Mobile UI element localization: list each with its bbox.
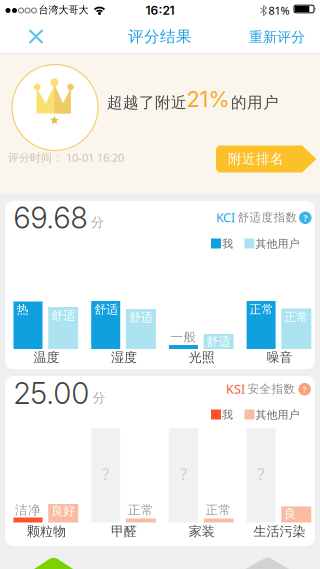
- staticText: KSI: [226, 380, 245, 397]
- staticText: 台湾大哥大: [38, 4, 88, 16]
- staticText: 21%: [186, 86, 229, 112]
- staticText: 温度: [33, 349, 59, 366]
- staticText: 16:21: [145, 3, 174, 18]
- staticText: ?: [303, 212, 307, 224]
- staticText: 我: [222, 408, 233, 422]
- staticText: 重新评分: [249, 28, 305, 46]
- staticText: ?: [102, 463, 109, 485]
- staticText: ?: [303, 383, 307, 395]
- button[interactable]: 附近排名: [216, 145, 316, 172]
- button[interactable]: 重新评分: [237, 24, 317, 50]
- staticText: 洁净: [15, 502, 41, 518]
- staticText: 其他用户: [255, 408, 299, 422]
- staticText: ?: [258, 463, 265, 485]
- staticText: 舒适: [207, 334, 231, 349]
- staticText: 评分结果: [128, 27, 192, 46]
- staticText: 正常: [284, 309, 308, 324]
- staticText: 正常: [128, 502, 154, 518]
- staticText: 81%: [268, 3, 289, 18]
- button[interactable]: 舒适度指数说明: [299, 212, 312, 224]
- staticText: 生活污染: [253, 523, 305, 540]
- staticText: 噪音: [266, 349, 292, 366]
- staticText: 25.00: [13, 376, 89, 411]
- staticText: 分: [91, 214, 104, 231]
- staticText: 光照: [189, 349, 215, 366]
- staticText: 附近排名: [228, 150, 284, 167]
- button[interactable]: 安全指数说明: [298, 383, 311, 395]
- staticText: 甲醛: [111, 523, 137, 540]
- staticText: 正常: [206, 502, 232, 518]
- staticText: 舒适: [129, 310, 153, 325]
- staticText: 舒适度指数: [237, 210, 297, 225]
- staticText: 舒适: [51, 308, 75, 323]
- staticText: 正常: [250, 302, 274, 317]
- staticText: 良好: [51, 503, 75, 518]
- staticText: 分: [92, 390, 105, 406]
- staticText: KCI: [216, 209, 235, 226]
- staticText: 热: [16, 302, 28, 317]
- staticText: 湿度: [111, 349, 137, 366]
- staticText: 69.68: [13, 200, 87, 236]
- staticText: 舒适: [94, 302, 118, 317]
- button[interactable]: 关闭: [14, 20, 58, 53]
- staticText: ?: [180, 463, 187, 485]
- staticText: 评分时间： 10-01 16:20: [8, 150, 124, 165]
- staticText: 良: [284, 506, 296, 521]
- staticText: 一般: [170, 329, 196, 345]
- staticText: 颗粒物: [27, 523, 66, 540]
- staticText: 的用户: [231, 93, 279, 112]
- staticText: 我: [222, 237, 233, 251]
- staticText: 其他用户: [255, 237, 299, 251]
- staticText: 安全指数: [247, 382, 295, 396]
- staticText: 家装: [189, 523, 215, 540]
- staticText: 超越了附近: [107, 93, 187, 112]
